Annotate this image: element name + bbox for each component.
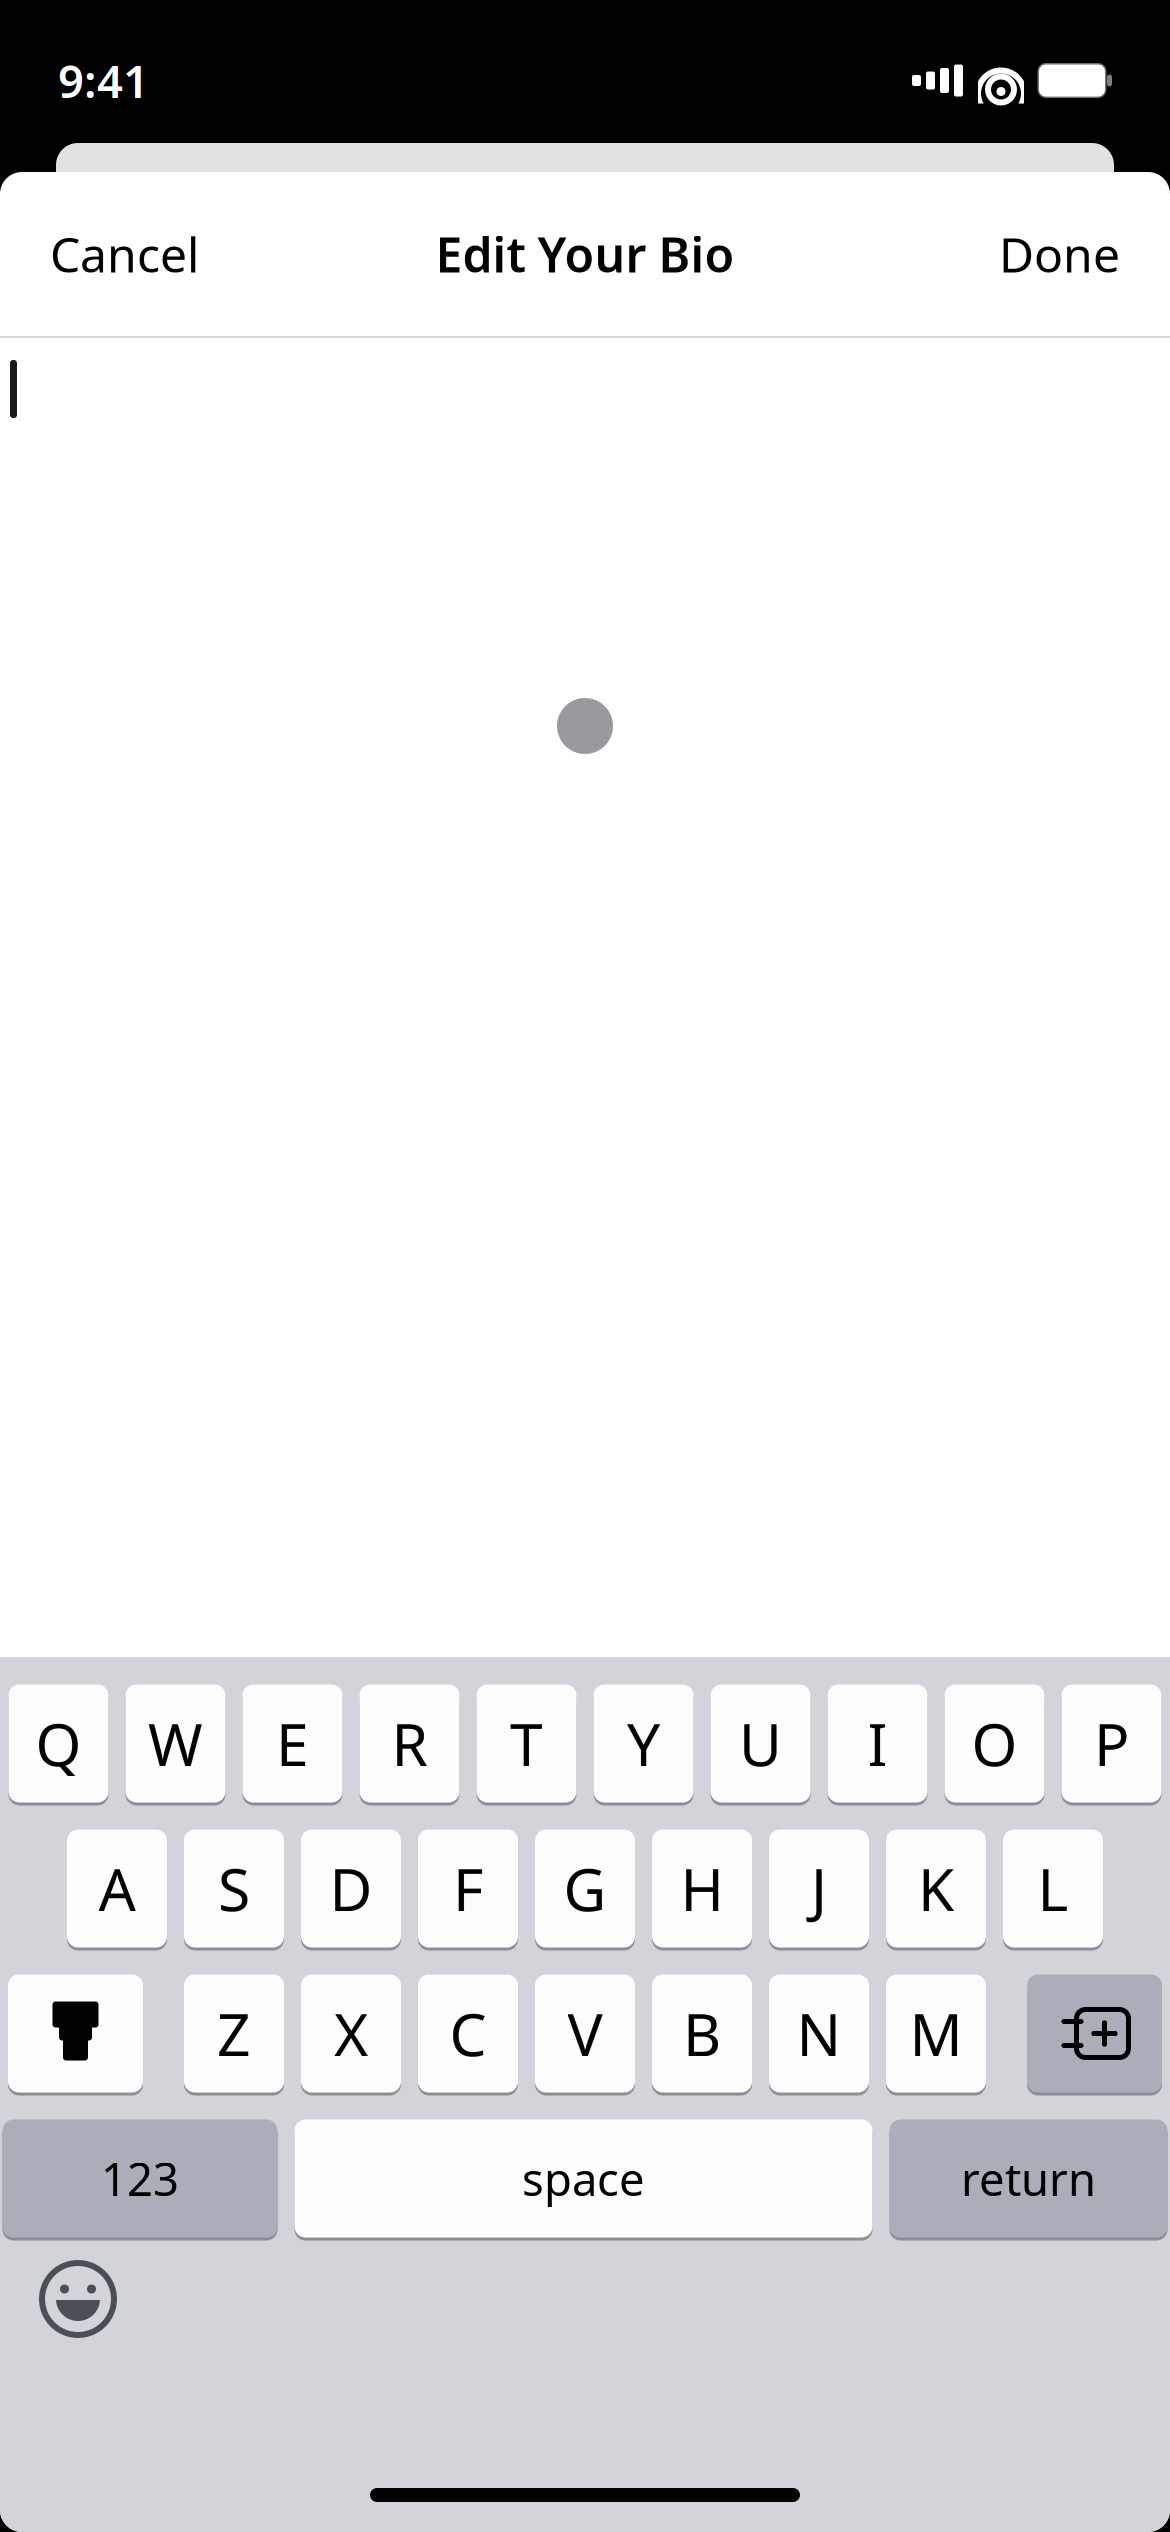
button[interactable]: Shift (8, 1973, 143, 2094)
staticText: P (1094, 1704, 1129, 1782)
staticText: return (961, 2148, 1096, 2209)
button[interactable]: M (886, 1973, 986, 2094)
staticText: M (909, 1994, 962, 2072)
button[interactable]: A (67, 1828, 167, 1949)
staticText: G (563, 1849, 606, 1927)
button[interactable]: F (418, 1828, 518, 1949)
button[interactable]: B (652, 1973, 752, 2094)
button[interactable]: Q (8, 1683, 108, 1804)
staticText: O (971, 1704, 1017, 1782)
staticText: V (567, 1994, 602, 2072)
staticText: U (739, 1704, 782, 1782)
staticText: F (453, 1849, 483, 1927)
staticText: 123 (101, 2148, 179, 2209)
staticText: I (867, 1704, 887, 1782)
staticText: H (680, 1849, 723, 1927)
button[interactable]: Done (987, 208, 1132, 300)
button[interactable]: Delete (1027, 1973, 1162, 2094)
staticText: 9:41 (58, 50, 149, 111)
button[interactable]: J (769, 1828, 869, 1949)
button[interactable]: return (889, 2118, 1167, 2239)
button[interactable]: I (827, 1683, 927, 1804)
staticText: Done (999, 222, 1120, 286)
staticText: W (148, 1704, 203, 1782)
staticText: space (522, 2148, 645, 2209)
button[interactable]: V (535, 1973, 635, 2094)
button[interactable]: X (301, 1973, 401, 2094)
button[interactable]: G (535, 1828, 635, 1949)
staticText: E (276, 1704, 309, 1782)
button[interactable]: U (710, 1683, 810, 1804)
button[interactable]: C (418, 1973, 518, 2094)
staticText: Cancel (50, 222, 199, 286)
button[interactable]: O (944, 1683, 1044, 1804)
staticText: X (334, 1994, 368, 2072)
button[interactable]: Y (593, 1683, 693, 1804)
button[interactable]: L (1003, 1828, 1103, 1949)
staticText: R (391, 1704, 427, 1782)
staticText: T (510, 1704, 543, 1782)
button[interactable]: N (769, 1973, 869, 2094)
button[interactable]: Z (184, 1973, 284, 2094)
button[interactable]: W (125, 1683, 225, 1804)
staticText: C (449, 1994, 486, 2072)
button[interactable]: S (184, 1828, 284, 1949)
staticText: D (329, 1849, 372, 1927)
staticText: S (218, 1849, 250, 1927)
button[interactable]: T (476, 1683, 576, 1804)
button[interactable]: Emoji keyboard (30, 2251, 126, 2347)
staticText: Z (217, 1994, 251, 2072)
staticText: Q (35, 1704, 81, 1782)
button[interactable]: H (652, 1828, 752, 1949)
staticText: N (796, 1994, 841, 2072)
staticText: L (1037, 1849, 1068, 1927)
staticText: A (98, 1849, 135, 1927)
button[interactable]: Cancel (38, 208, 211, 300)
button[interactable]: space (294, 2118, 872, 2239)
staticText: Edit Your Bio (435, 222, 734, 286)
staticText: B (683, 1994, 721, 2072)
button[interactable]: D (301, 1828, 401, 1949)
button[interactable]: P (1061, 1683, 1161, 1804)
staticText: J (811, 1849, 827, 1927)
button[interactable]: R (359, 1683, 459, 1804)
staticText: Y (627, 1704, 660, 1782)
button[interactable]: 123 (2, 2118, 277, 2239)
button[interactable]: E (242, 1683, 342, 1804)
button[interactable]: K (886, 1828, 986, 1949)
staticText: K (918, 1849, 954, 1927)
